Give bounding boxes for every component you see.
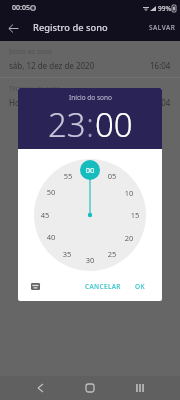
staticText: 10 bbox=[122, 188, 136, 198]
button[interactable]: CANCELAR bbox=[83, 279, 123, 294]
button[interactable]: Back bbox=[1, 16, 25, 40]
button[interactable]: Início do sono bbox=[0, 41, 180, 77]
staticText: 23 bbox=[48, 102, 86, 147]
staticText: 05 bbox=[105, 171, 119, 181]
button[interactable]: 00 bbox=[95, 102, 133, 147]
staticText: 16:04 bbox=[150, 60, 171, 71]
staticText: 40 bbox=[44, 232, 58, 242]
staticText: SALVAR bbox=[149, 23, 176, 32]
button[interactable]: Término do sono bbox=[0, 78, 180, 114]
staticText: Início do sono bbox=[69, 93, 112, 102]
staticText: : bbox=[86, 102, 95, 147]
staticText: 50 bbox=[44, 187, 58, 197]
staticText: Término do sono bbox=[9, 84, 61, 93]
button[interactable]: 23 bbox=[48, 102, 86, 147]
staticText: Hoje bbox=[9, 97, 27, 108]
button[interactable]: Home bbox=[78, 376, 102, 400]
staticText: 45 bbox=[38, 210, 52, 220]
staticText: 20 bbox=[122, 233, 136, 243]
button[interactable]: Recent apps bbox=[128, 376, 152, 400]
staticText: 00:05 bbox=[12, 3, 30, 13]
staticText: 00 bbox=[95, 102, 133, 147]
button[interactable]: Back bbox=[28, 376, 52, 400]
button[interactable]: OK bbox=[133, 279, 147, 294]
staticText: 00 bbox=[83, 165, 97, 175]
staticText: 00:04 bbox=[150, 97, 171, 108]
button[interactable]: Switch to keyboard input bbox=[29, 280, 42, 293]
staticText: 25 bbox=[105, 249, 119, 259]
staticText: CANCELAR bbox=[85, 282, 121, 291]
staticText: 35 bbox=[60, 249, 74, 259]
staticText: 30 bbox=[83, 255, 97, 265]
button[interactable]: SALVAR bbox=[145, 17, 180, 38]
staticText: Início do sono bbox=[9, 47, 52, 56]
staticText: Registro de sono bbox=[33, 21, 108, 34]
staticText: sáb, 12 de dez de 2020 bbox=[9, 60, 95, 71]
staticText: 55 bbox=[61, 171, 75, 181]
staticText: 15 bbox=[128, 210, 142, 220]
staticText: 99% bbox=[158, 4, 171, 13]
staticText: OK bbox=[135, 282, 145, 291]
